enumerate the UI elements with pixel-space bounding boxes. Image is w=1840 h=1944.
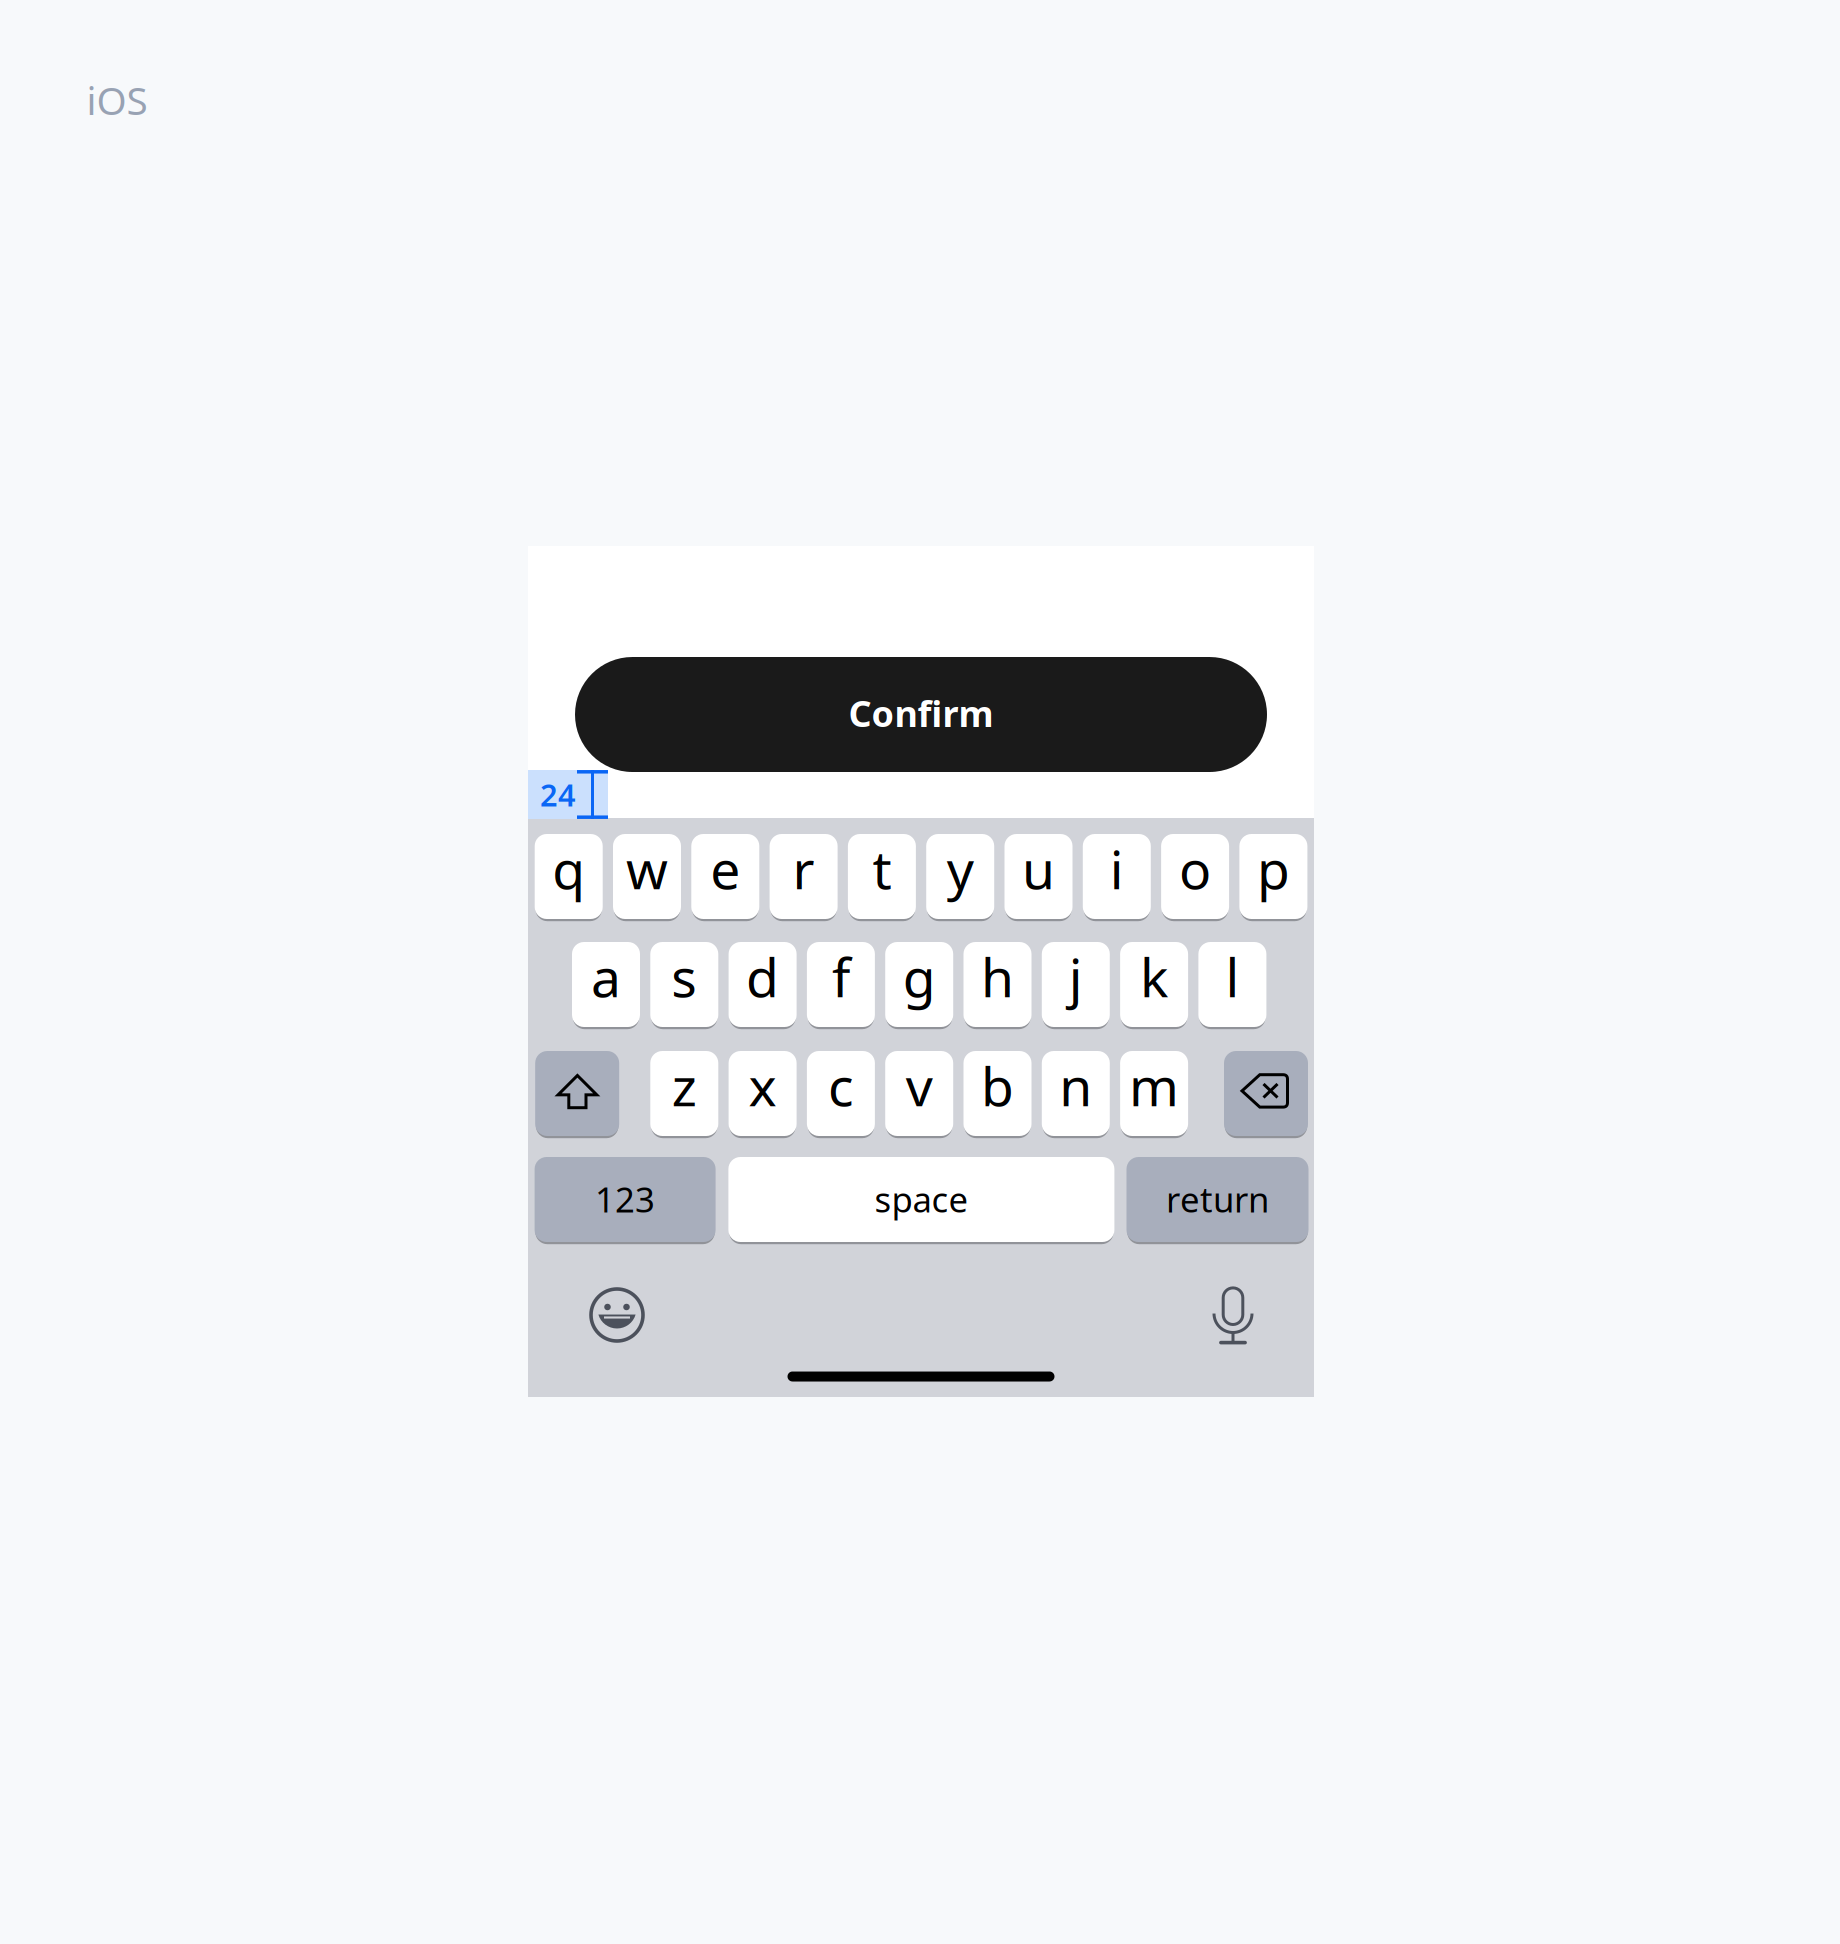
staticText: l [1225, 941, 1239, 1012]
button[interactable]: space [728, 1157, 1114, 1242]
staticText: g [903, 941, 936, 1012]
staticText: return [1166, 1176, 1269, 1222]
staticText: a [591, 941, 621, 1012]
button[interactable]: g [885, 942, 953, 1027]
staticText: b [981, 1050, 1014, 1121]
staticText: j [1069, 941, 1083, 1012]
button[interactable]: c [807, 1051, 875, 1136]
button[interactable]: z [650, 1051, 718, 1136]
staticText: x [749, 1050, 777, 1121]
staticText: o [1179, 833, 1211, 904]
button[interactable]: Confirm [575, 657, 1267, 772]
staticText: w [626, 833, 668, 904]
button[interactable]: m [1120, 1051, 1188, 1136]
button[interactable]: q [535, 834, 603, 919]
button[interactable]: r [770, 834, 838, 919]
staticText: f [832, 941, 850, 1012]
button[interactable]: y [926, 834, 994, 919]
button[interactable]: d [729, 942, 797, 1027]
staticText: Confirm [848, 689, 993, 737]
button[interactable]: f [807, 942, 875, 1027]
staticText: h [981, 941, 1014, 1012]
button[interactable]: p [1239, 834, 1307, 919]
button[interactable]: x [729, 1051, 797, 1136]
button[interactable]: l [1198, 942, 1266, 1027]
staticText: c [828, 1050, 854, 1121]
button[interactable]: j [1042, 942, 1110, 1027]
button[interactable]: b [963, 1051, 1031, 1136]
button[interactable]: u [1004, 834, 1072, 919]
button[interactable]: Delete [1224, 1051, 1308, 1136]
button[interactable]: Emoji [590, 1288, 644, 1342]
staticText: p [1257, 833, 1290, 904]
button[interactable]: w [613, 834, 681, 919]
staticText: k [1140, 941, 1168, 1012]
button[interactable]: s [650, 942, 718, 1027]
staticText: s [671, 941, 697, 1012]
button[interactable]: n [1042, 1051, 1110, 1136]
staticText: v [906, 1050, 933, 1121]
button[interactable]: t [848, 834, 916, 919]
staticText: iOS [86, 74, 147, 126]
staticText: e [710, 833, 740, 904]
staticText: r [793, 833, 815, 904]
staticText: d [746, 941, 779, 1012]
staticText: t [872, 833, 891, 904]
staticText: space [874, 1176, 968, 1222]
button[interactable]: i [1083, 834, 1151, 919]
staticText: 24 [540, 774, 576, 815]
staticText: u [1022, 833, 1055, 904]
button[interactable]: a [572, 942, 640, 1027]
staticText: q [552, 833, 585, 904]
button[interactable]: Dictation [1211, 1284, 1255, 1346]
button[interactable]: h [963, 942, 1031, 1027]
staticText: z [672, 1050, 697, 1121]
button[interactable]: 123 [535, 1157, 716, 1242]
button[interactable]: return [1126, 1157, 1308, 1242]
button[interactable]: Shift [535, 1051, 619, 1136]
staticText: 123 [595, 1176, 655, 1222]
staticText: y [947, 833, 974, 904]
button[interactable]: k [1120, 942, 1188, 1027]
button[interactable]: e [691, 834, 759, 919]
staticText: n [1059, 1050, 1092, 1121]
staticText: i [1110, 833, 1124, 904]
staticText: m [1129, 1050, 1179, 1121]
button[interactable]: v [885, 1051, 953, 1136]
button[interactable]: o [1161, 834, 1229, 919]
